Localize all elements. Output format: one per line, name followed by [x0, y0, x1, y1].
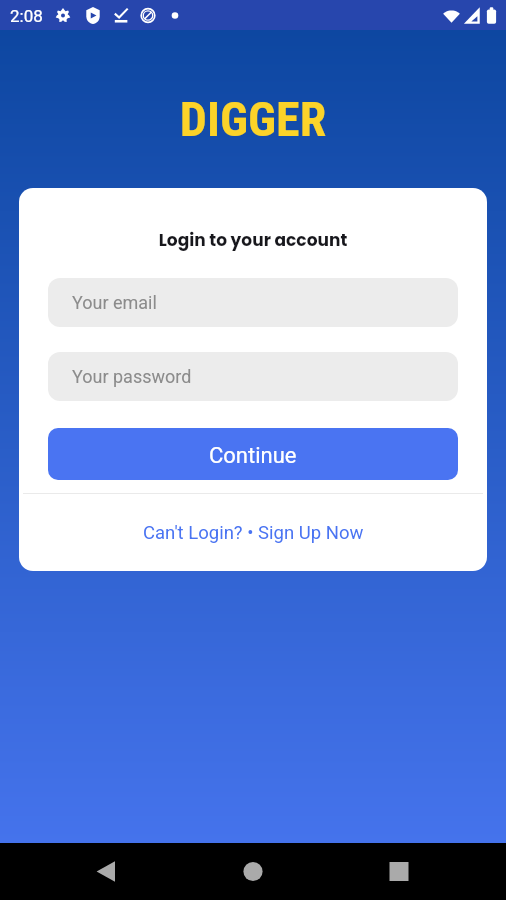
button[interactable]: Recent apps [371, 843, 427, 900]
staticText: 2:08 [10, 6, 43, 26]
staticText: Continue [209, 443, 297, 469]
staticText: DIGGER [0, 91, 506, 147]
staticText: Your password [72, 366, 192, 387]
button[interactable]: Back [78, 843, 134, 900]
button[interactable]: Home [225, 843, 281, 900]
staticText: Login to your account [19, 228, 487, 252]
button[interactable]: Your password [48, 352, 458, 401]
staticText: Can't Login? • Sign Up Now [143, 522, 364, 544]
button[interactable]: Your email [48, 278, 458, 327]
staticText: Your email [72, 292, 157, 313]
button[interactable]: Can't Login? • Sign Up Now [19, 521, 487, 543]
button[interactable]: Continue [48, 428, 458, 480]
